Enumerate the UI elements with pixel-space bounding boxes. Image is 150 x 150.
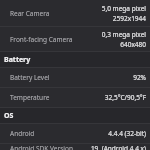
- staticText: 32,5°C/90,5°F: [104, 93, 146, 102]
- staticText: Battery Level: [10, 73, 133, 82]
- staticText: Android SDK Version: [10, 144, 90, 150]
- staticText: 2592x1944: [112, 14, 146, 23]
- staticText: 0,3 mega pixel: [101, 30, 146, 39]
- staticText: 19 (Android 4.4.x): [90, 144, 146, 150]
- button[interactable]: Android: [0, 124, 150, 143]
- button[interactable]: Temperature: [0, 88, 150, 107]
- staticText: Temperature: [10, 93, 104, 102]
- staticText: Rear Camera: [10, 9, 101, 18]
- staticText: 5,0 mega pixel: [101, 4, 146, 13]
- staticText: Battery: [4, 55, 31, 65]
- button[interactable]: Android SDK Version: [0, 144, 150, 150]
- staticText: 92%: [133, 73, 146, 82]
- button[interactable]: Battery Level: [0, 68, 150, 87]
- staticText: Front-facing Camera: [10, 35, 101, 44]
- staticText: 640x480: [120, 40, 146, 49]
- button[interactable]: Rear Camera: [0, 0, 150, 26]
- staticText: Android: [10, 129, 108, 138]
- staticText: 4.4.4 (32-bit): [108, 129, 146, 138]
- staticText: OS: [4, 111, 14, 121]
- button[interactable]: Front-facing Camera: [0, 27, 150, 51]
